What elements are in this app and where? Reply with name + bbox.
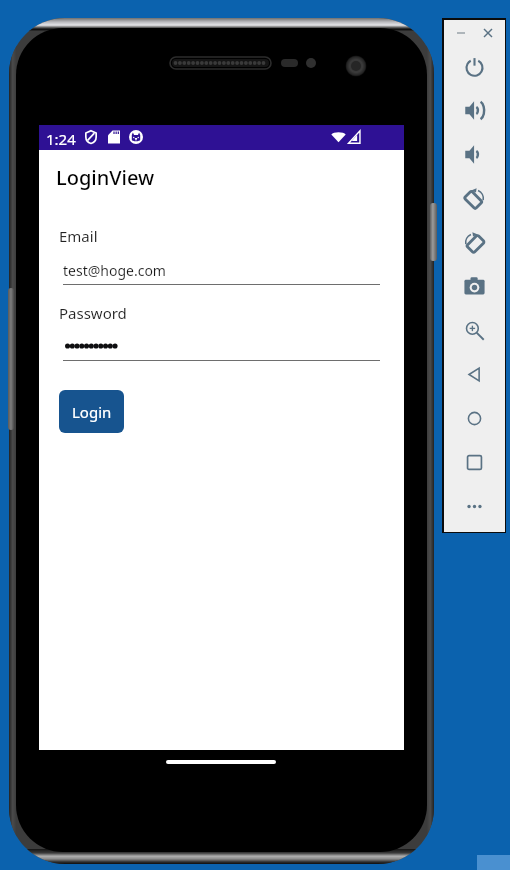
button[interactable]: Screenshot: [452, 264, 497, 308]
button[interactable]: Home: [452, 396, 497, 440]
button[interactable]: Rotate left: [452, 176, 497, 220]
button[interactable]: Volume down: [452, 132, 497, 176]
button[interactable]: Back: [452, 352, 497, 396]
button[interactable]: Close: [477, 22, 499, 44]
button[interactable]: Rotate right: [452, 220, 497, 264]
staticText: LoginView: [56, 164, 155, 191]
button[interactable]: Minimize: [449, 22, 473, 44]
button[interactable]: Volume up: [452, 88, 497, 132]
button[interactable]: Login: [59, 390, 124, 433]
staticText: Email: [59, 226, 98, 246]
button[interactable]: More: [452, 484, 497, 528]
button[interactable]: Overview: [452, 440, 497, 484]
staticText: test@hoge.com: [63, 261, 166, 280]
button[interactable]: Zoom in: [452, 308, 497, 352]
staticText: Login: [72, 402, 112, 422]
staticText: 1:24: [46, 129, 76, 149]
button[interactable]: Power: [452, 44, 497, 88]
staticText: Password: [59, 303, 127, 323]
